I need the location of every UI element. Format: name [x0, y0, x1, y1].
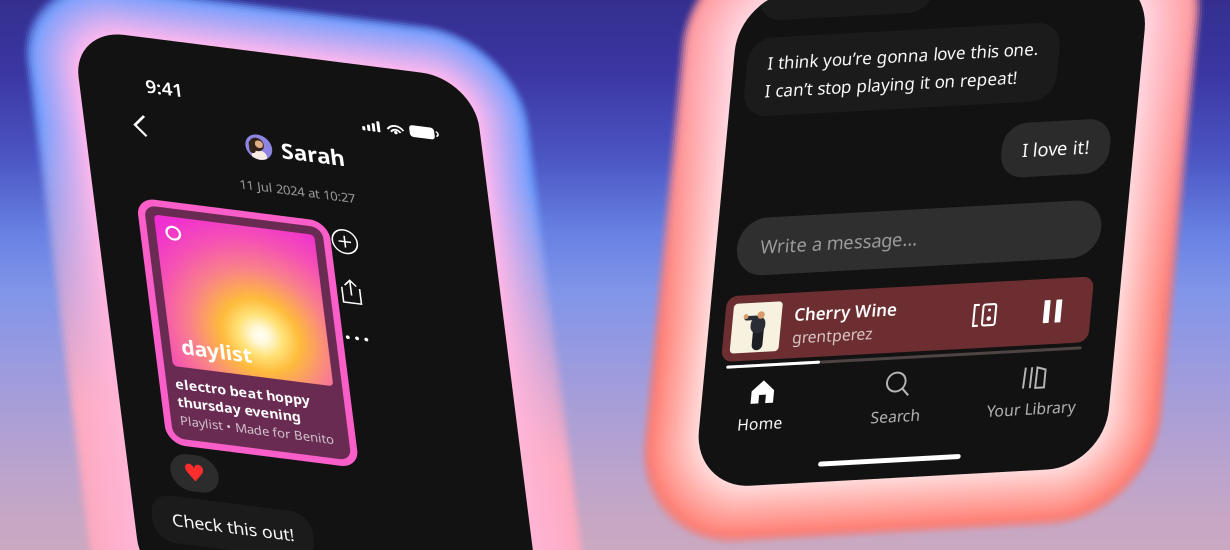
staticText: I think you’re gonna love this one. [35, 59, 313, 82]
staticText: Check this out! [41, 0, 178, 13]
staticText: 9:41 [75, 44, 117, 72]
button[interactable]: Heart reaction [48, 497, 102, 541]
staticText: electro beat hoppy [66, 402, 217, 424]
button[interactable]: Add to your library [265, 201, 295, 231]
staticText: ♥ [62, 503, 87, 535]
staticText: Home [39, 424, 85, 445]
button[interactable]: Your Library [270, 384, 409, 450]
button[interactable]: Search [131, 384, 270, 450]
button[interactable]: Share [266, 259, 294, 291]
button[interactable]: Write a message... [21, 227, 394, 285]
button[interactable]: Pause [342, 325, 363, 350]
button[interactable]: Home [0, 384, 131, 450]
button[interactable]: More options [265, 319, 295, 343]
staticText: Search [175, 424, 226, 445]
staticText: daylist [78, 351, 157, 383]
staticText: Cherry Wine [87, 315, 192, 338]
staticText: Playlist • Made for Benito [66, 447, 239, 466]
staticText: 11 Jul 2024 at 10:27 [168, 152, 298, 172]
staticText: Write a message... [45, 244, 206, 268]
button[interactable]: Back [45, 88, 83, 126]
staticText: I love it! [305, 161, 374, 185]
button[interactable]: Connect to a device [269, 324, 296, 351]
staticText: I can’t stop playing it on repeat! [35, 87, 294, 110]
staticText: Your Library [294, 424, 385, 445]
staticText: thursday evening [66, 424, 204, 445]
staticText: grentperez [87, 339, 170, 360]
button[interactable]: daylist [48, 194, 264, 487]
